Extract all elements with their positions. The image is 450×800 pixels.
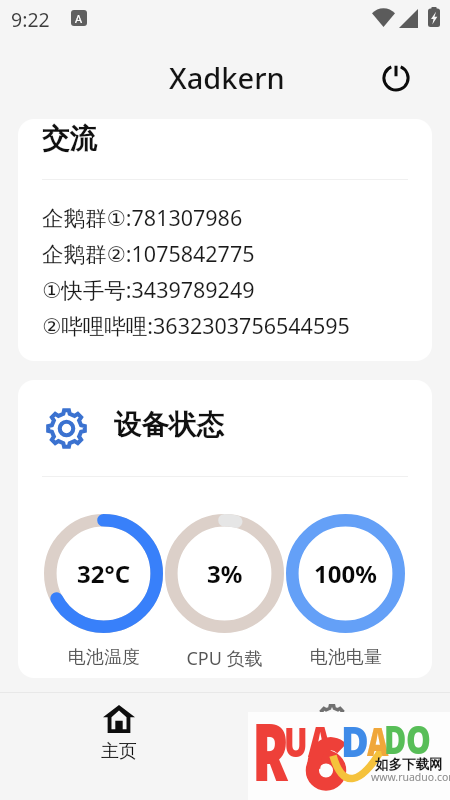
staticText: 企鹅群②:1075842775 <box>42 239 255 268</box>
staticText: 设置 <box>314 740 350 763</box>
staticText: 主页 <box>101 740 137 763</box>
staticText: 9:22 <box>11 6 50 33</box>
staticText: ①快手号:3439789249 <box>42 275 255 304</box>
staticText: 如多下载网 <box>375 756 443 773</box>
staticText: 设备状态 <box>114 408 224 443</box>
staticText: ②哔哩哔哩:3632303756544595 <box>42 311 350 340</box>
staticText: Xadkern <box>169 58 285 97</box>
staticText: 3% <box>207 557 243 590</box>
staticText: A <box>367 715 389 767</box>
button[interactable]: 设置 <box>269 699 395 769</box>
staticText: 电池电量 <box>310 646 382 669</box>
button[interactable]: 主页 <box>56 699 182 769</box>
staticText: R <box>252 693 290 781</box>
staticText: D <box>341 712 369 769</box>
staticText: D <box>384 713 406 765</box>
staticText: U <box>284 714 308 768</box>
staticText: A <box>308 712 333 769</box>
staticText: CPU 负载 <box>186 646 263 671</box>
staticText: www.ruaduo.com <box>371 770 450 784</box>
staticText: A <box>75 11 83 26</box>
staticText: 交流 <box>42 122 97 157</box>
staticText: 电池温度 <box>68 646 140 669</box>
staticText: 32°C <box>77 557 131 590</box>
staticText: O <box>406 713 431 765</box>
staticText: 100% <box>314 557 377 590</box>
button[interactable]: Power <box>372 54 420 102</box>
staticText: 企鹅群①:781307986 <box>42 203 243 232</box>
